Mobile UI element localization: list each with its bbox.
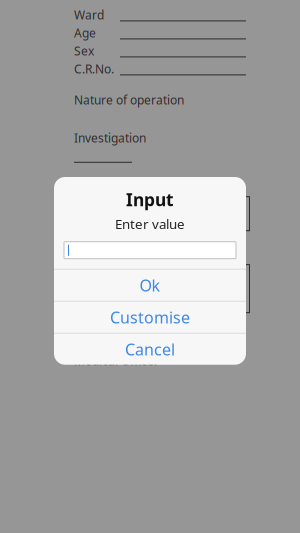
staticText: Sex <box>74 43 94 59</box>
staticText: Ward <box>74 7 104 23</box>
staticText: Age <box>74 25 96 41</box>
staticText: Clinical notes <box>74 245 148 261</box>
staticText: Nature of operation <box>74 92 184 108</box>
staticText: Ok <box>139 275 160 296</box>
staticText: [Enter here] <box>82 283 149 299</box>
button[interactable]: Customise <box>54 302 246 333</box>
button[interactable]: Ok <box>54 270 246 301</box>
staticText: Investigation <box>74 130 146 146</box>
staticText: C.R.No. <box>74 61 114 77</box>
staticText: Cancel <box>125 339 175 360</box>
button[interactable]: Cancel <box>54 334 246 365</box>
staticText: Customise <box>110 307 190 328</box>
staticText: Medical Officer <box>74 353 159 369</box>
staticText: [Enter here] <box>82 208 149 224</box>
staticText: Enter value <box>115 215 185 233</box>
staticText: Input <box>126 188 174 211</box>
